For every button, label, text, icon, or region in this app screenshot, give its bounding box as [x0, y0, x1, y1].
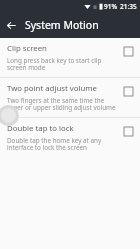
- staticText: System Motion: [25, 18, 99, 32]
- button[interactable]: Two point adjust volume checkbox: [122, 85, 135, 98]
- staticText: 21:35: [120, 2, 137, 11]
- staticText: Double tap to lock: [7, 123, 74, 134]
- button[interactable]: Double tap to lock: [0, 118, 140, 157]
- button[interactable]: Double tap to lock checkbox: [122, 125, 135, 138]
- button[interactable]: Two point adjust volume: [0, 78, 140, 117]
- staticText: Two fingers at the same time the lower o…: [7, 96, 117, 112]
- button[interactable]: Clip screen: [0, 38, 140, 77]
- staticText: Clip screen: [7, 43, 47, 54]
- staticText: Long press back key to start clip screen…: [7, 56, 117, 72]
- staticText: Double tap the home key at any interface…: [7, 136, 117, 152]
- staticText: 91%: [104, 2, 117, 11]
- button[interactable]: Clip screen checkbox: [122, 45, 135, 58]
- staticText: Two point adjust volume: [7, 83, 98, 94]
- button[interactable]: Back: [3, 17, 20, 34]
